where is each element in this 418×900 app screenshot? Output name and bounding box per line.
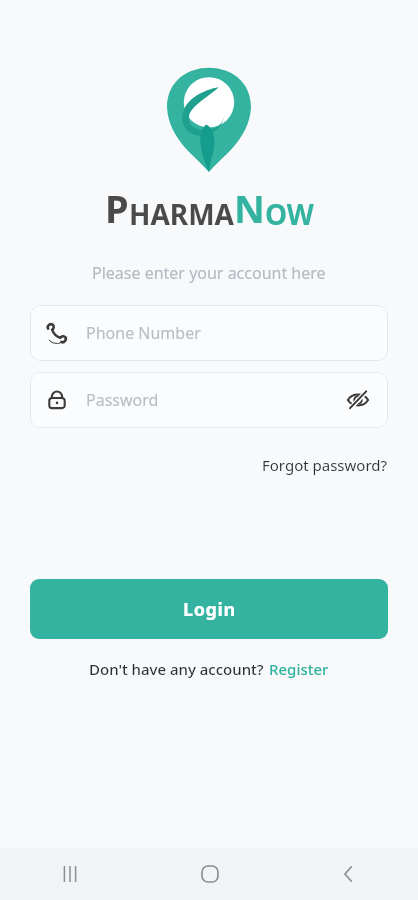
button[interactable]: Register (268, 656, 330, 682)
staticText: N (234, 182, 265, 234)
button[interactable]: Recent apps (0, 848, 140, 900)
staticText: Please enter your account here (92, 262, 326, 284)
button[interactable]: Toggle password visibility (344, 386, 372, 414)
staticText: Register (269, 659, 329, 679)
staticText: Login (183, 597, 236, 622)
button[interactable]: Password field (30, 372, 388, 428)
staticText: Don't have any account? (89, 659, 268, 679)
staticText: Forgot password? (262, 455, 388, 475)
button[interactable]: Phone Number field (30, 305, 388, 361)
staticText: HARMA (129, 195, 234, 233)
staticText: Phone Number (86, 322, 372, 344)
button[interactable]: Back (279, 848, 418, 900)
staticText: Password (86, 389, 344, 411)
staticText: P (105, 182, 129, 234)
staticText: OW (265, 195, 314, 233)
button[interactable]: Forgot password? (260, 451, 390, 479)
button[interactable]: Home (140, 848, 279, 900)
button[interactable]: Login (30, 579, 388, 639)
